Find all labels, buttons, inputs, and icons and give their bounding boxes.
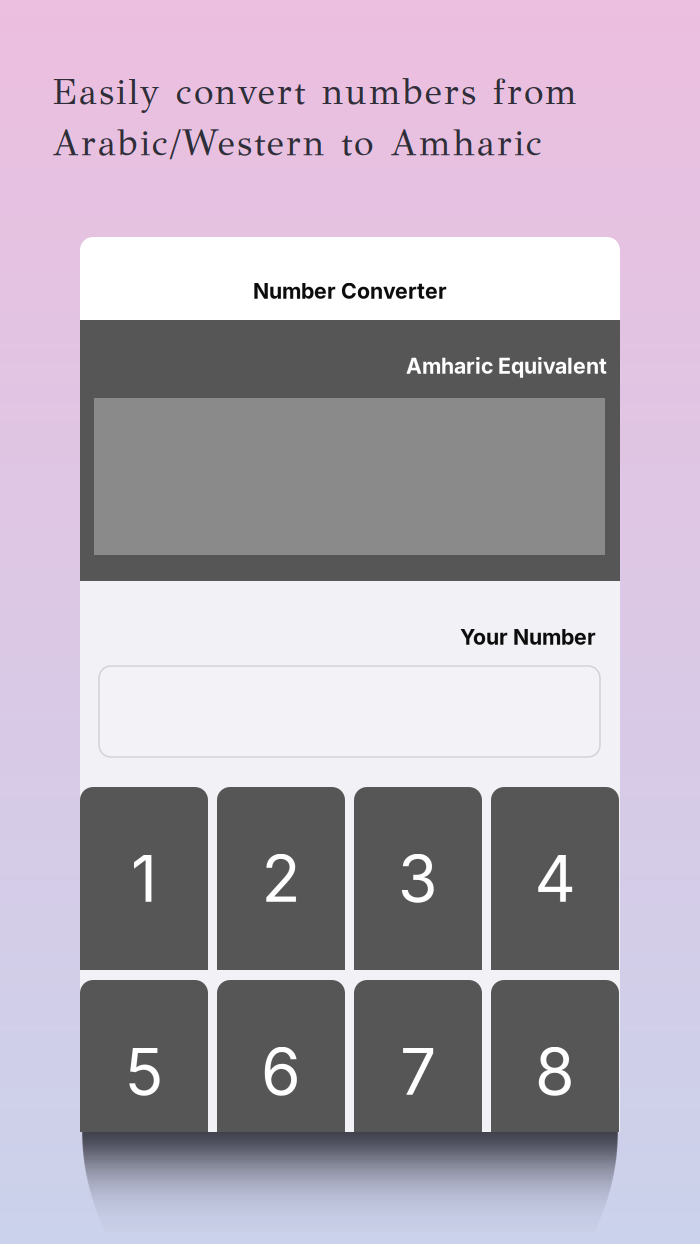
staticText: 4 — [534, 840, 575, 917]
button[interactable]: 1 — [80, 787, 208, 970]
staticText: 8 — [535, 1033, 575, 1110]
button[interactable]: 2 — [217, 787, 345, 970]
staticText: Number Converter — [253, 278, 447, 304]
staticText: Arabic/Western to Amharic — [52, 121, 542, 165]
staticText: 1 — [131, 840, 157, 917]
button[interactable]: 4 — [491, 787, 619, 970]
staticText: 3 — [398, 840, 438, 917]
staticText: 5 — [124, 1033, 163, 1110]
staticText: Your Number — [460, 624, 596, 650]
staticText: 2 — [261, 840, 300, 917]
staticText: 7 — [400, 1033, 436, 1110]
button[interactable]: 3 — [354, 787, 482, 970]
button[interactable]: 6 — [217, 980, 345, 1163]
staticText: Easily convert numbers from — [52, 70, 577, 114]
button[interactable]: 7 — [354, 980, 482, 1163]
button[interactable]: 8 — [491, 980, 619, 1163]
staticText: Amharic Equivalent — [406, 353, 607, 379]
button[interactable]: 5 — [80, 980, 208, 1163]
staticText: 6 — [261, 1033, 301, 1110]
